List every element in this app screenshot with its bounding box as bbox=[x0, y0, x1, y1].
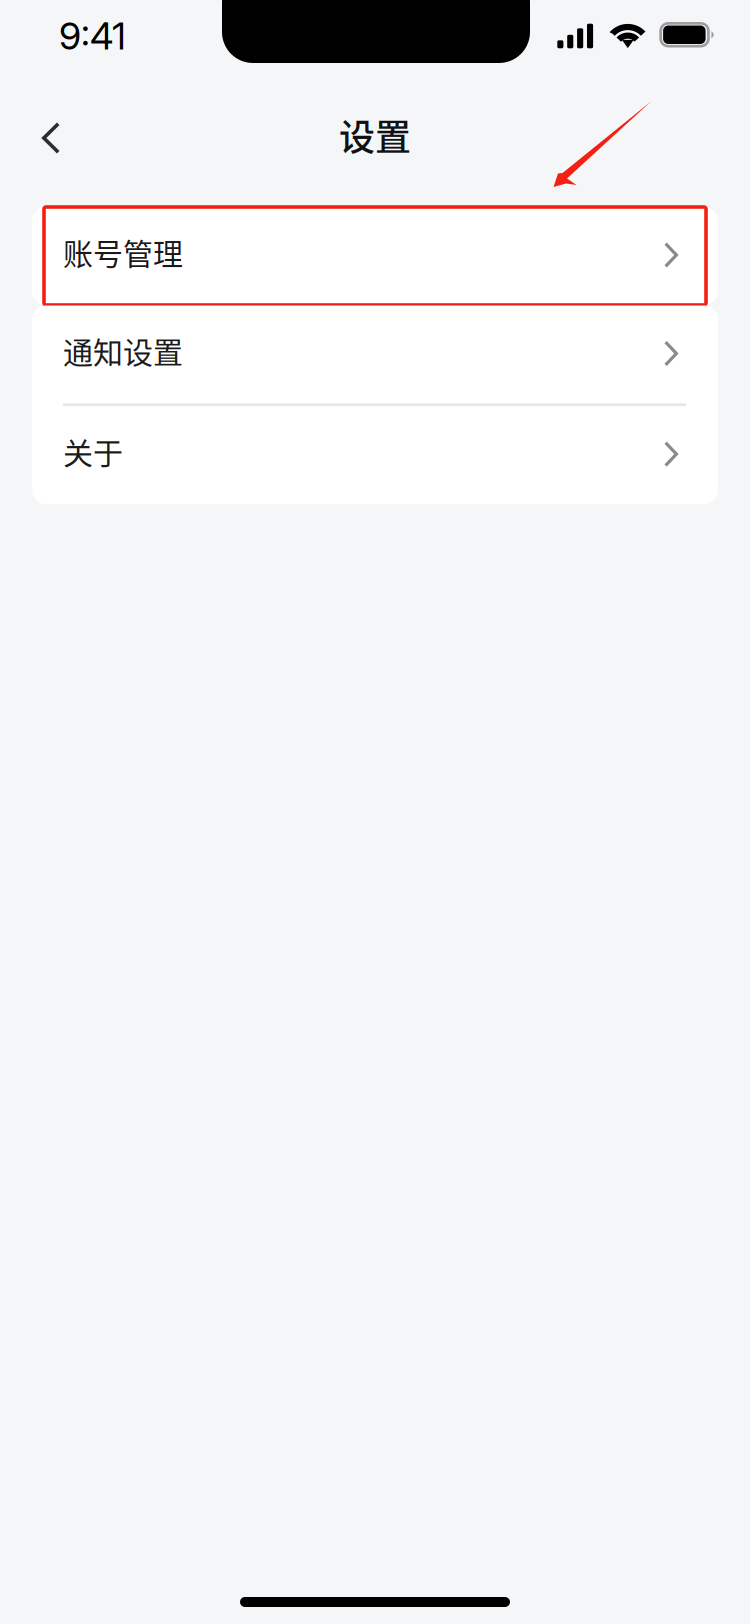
button[interactable]: 账号管理 bbox=[32, 207, 718, 305]
button[interactable]: 通知设置 bbox=[32, 305, 718, 403]
staticText: 关于 bbox=[63, 429, 123, 473]
staticText: 设置 bbox=[339, 109, 411, 161]
staticText: 9:41 bbox=[59, 13, 126, 59]
button[interactable]: Back bbox=[0, 106, 82, 170]
staticText: 通知设置 bbox=[63, 329, 183, 372]
button[interactable]: 关于 bbox=[32, 406, 718, 504]
staticText: 账号管理 bbox=[63, 230, 183, 274]
